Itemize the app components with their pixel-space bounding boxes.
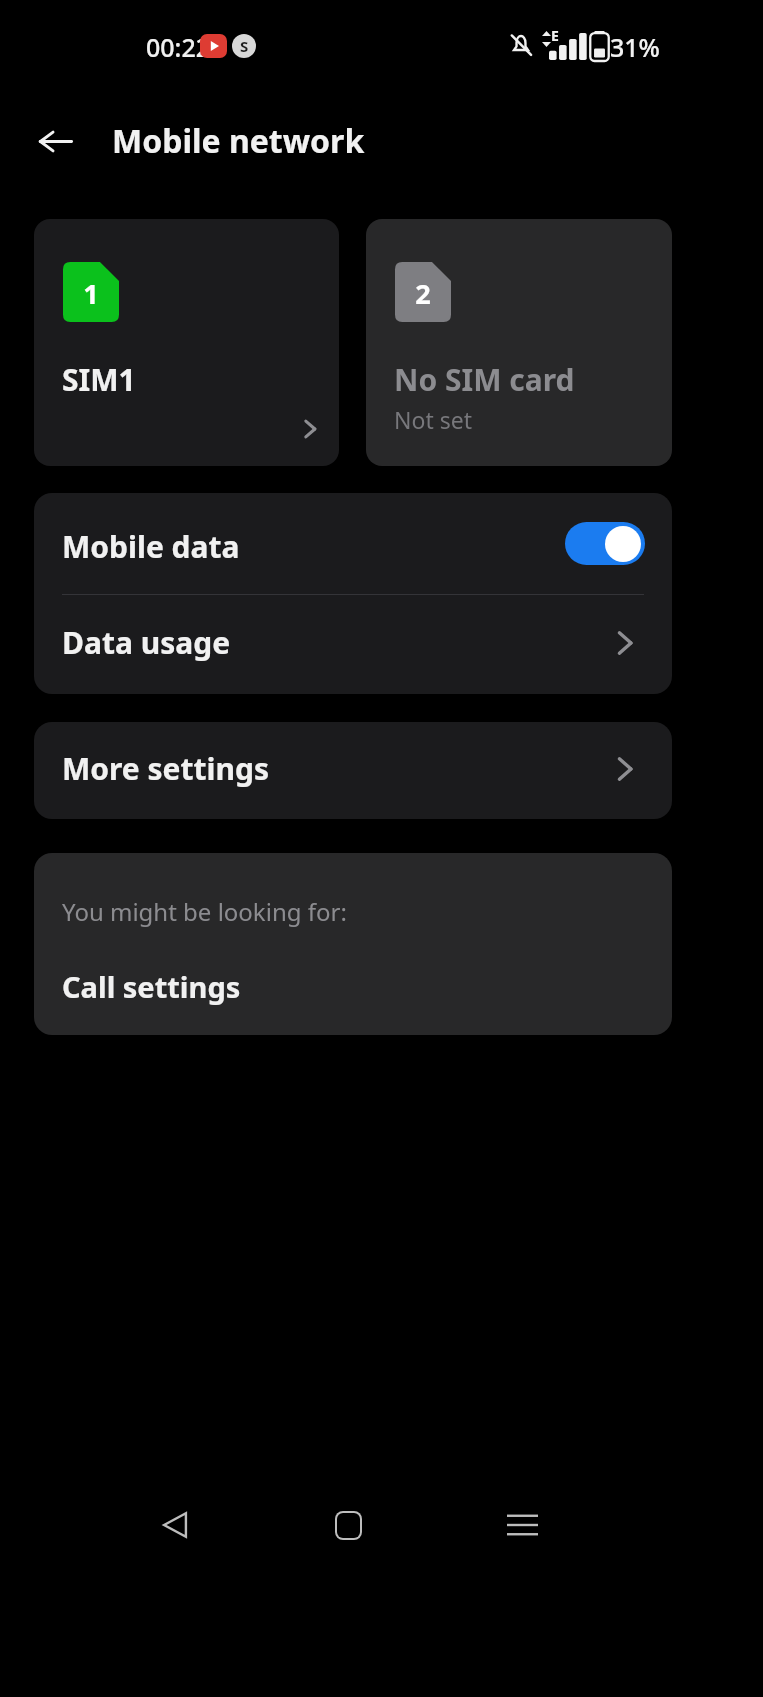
button[interactable]: Home [315, 1492, 381, 1558]
staticText: More settings [62, 748, 270, 789]
staticText: 31% [610, 30, 660, 64]
button[interactable]: Call settings [34, 953, 672, 1035]
button[interactable]: Mobile data [34, 493, 672, 594]
button[interactable]: Back [142, 1492, 208, 1558]
button[interactable]: Recent apps [489, 1492, 555, 1558]
button[interactable]: Data usage [34, 595, 672, 694]
staticText: 2 [395, 275, 451, 312]
staticText: Data usage [62, 622, 231, 663]
button[interactable]: 1 [34, 219, 339, 466]
staticText: Call settings [62, 967, 241, 1006]
staticText: You might be looking for: [62, 895, 347, 928]
staticText: Not set [394, 404, 472, 435]
button[interactable]: 2 [366, 219, 672, 466]
staticText: S [240, 36, 249, 56]
staticText: Mobile data [62, 526, 240, 567]
button[interactable]: Navigate up [24, 110, 86, 172]
staticText: SIM1 [62, 359, 136, 400]
staticText: No SIM card [394, 359, 575, 400]
staticText: 00:22 [146, 30, 211, 64]
button[interactable]: More settings [34, 722, 672, 819]
staticText: Mobile network [112, 119, 365, 163]
staticText: E [551, 26, 559, 45]
staticText: 1 [63, 275, 119, 312]
